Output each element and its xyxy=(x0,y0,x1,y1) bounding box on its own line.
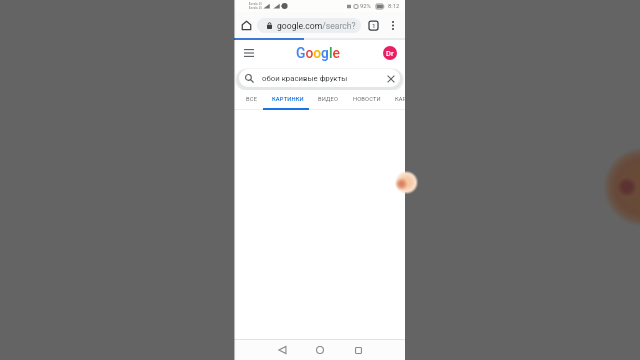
staticText: обои красивые фрукты xyxy=(262,74,348,83)
staticText: 92% xyxy=(360,3,371,10)
button[interactable]: НОВОСТИ xyxy=(346,90,388,109)
button[interactable]: обои красивые фрукты xyxy=(239,69,400,87)
staticText: НОВОСТИ xyxy=(353,96,381,103)
button[interactable]: Back xyxy=(269,340,295,360)
button[interactable]: ВИДЕО xyxy=(311,90,346,109)
button[interactable]: More options xyxy=(386,18,400,32)
staticText: Dr xyxy=(386,49,394,58)
staticText: Google xyxy=(296,45,340,61)
staticText: КАРТИНКИ xyxy=(272,96,304,103)
staticText: google.com/search? xyxy=(277,21,356,31)
button[interactable]: Clear search xyxy=(385,73,396,84)
staticText: 1 xyxy=(372,22,376,29)
staticText: 8:12 xyxy=(388,3,400,10)
button[interactable]: Home xyxy=(307,340,333,360)
button[interactable]: Recent apps xyxy=(345,340,371,360)
button[interactable]: Switch or open tabs, 1 open tab xyxy=(365,17,381,33)
staticText: КАРТЫ xyxy=(395,96,405,103)
button[interactable]: Home xyxy=(238,17,254,33)
button[interactable]: ВСЕ xyxy=(239,90,265,109)
staticText: Билайн 4G xyxy=(249,3,262,6)
staticText: ВИДЕО xyxy=(318,96,339,103)
button[interactable]: КАРТЫ xyxy=(388,90,405,109)
button[interactable]: Google Account xyxy=(379,42,401,64)
button[interactable]: Main menu xyxy=(240,44,258,62)
button[interactable]: КАРТИНКИ xyxy=(265,90,311,109)
button[interactable]: google.com/search? xyxy=(257,18,361,33)
staticText: Билайн 4G xyxy=(249,7,262,10)
staticText: ВСЕ xyxy=(246,96,258,103)
